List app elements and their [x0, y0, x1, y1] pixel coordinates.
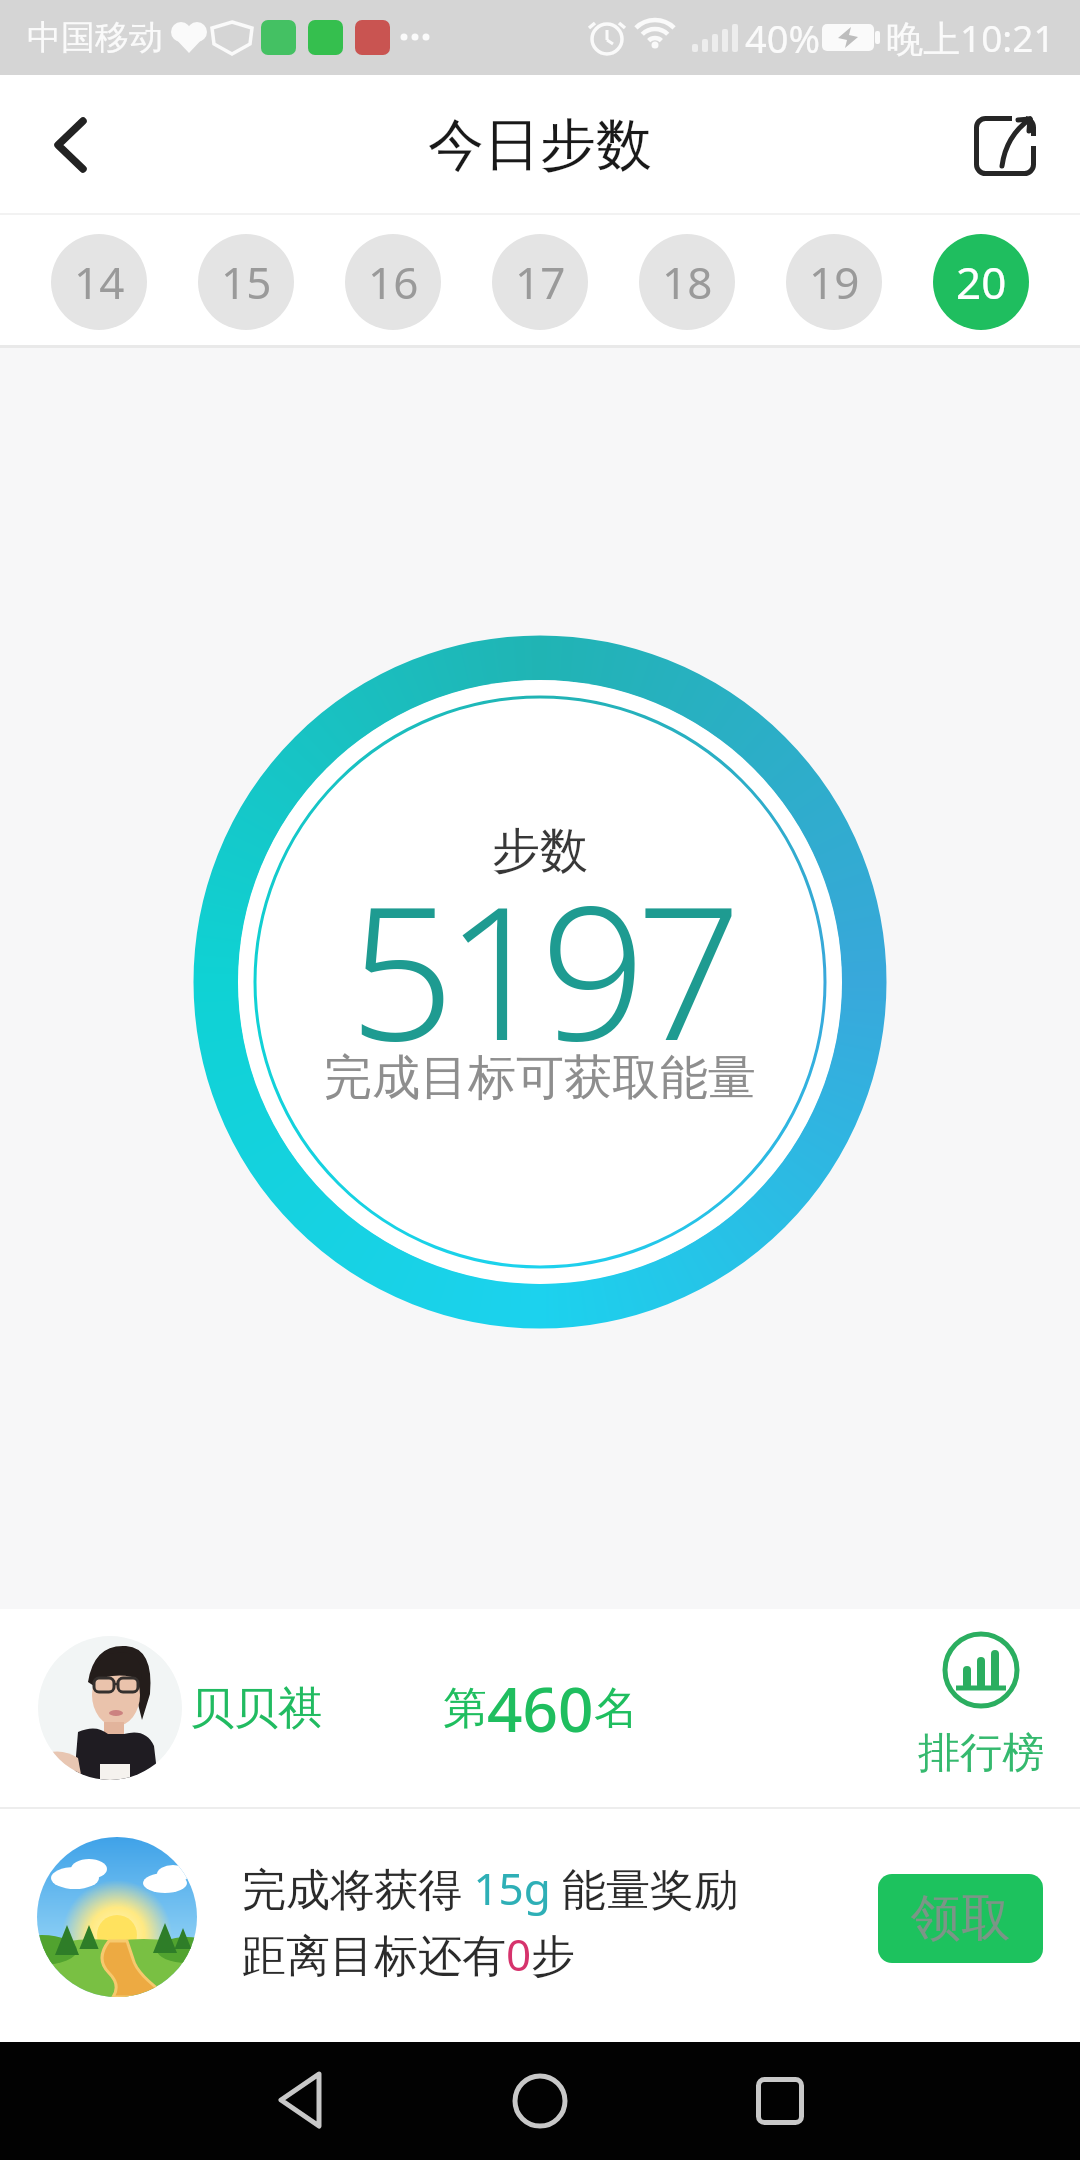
- staticText: 今日步数: [428, 110, 652, 181]
- staticText: 完成目标可获取能量: [324, 1048, 756, 1108]
- staticText: 460: [487, 1666, 594, 1750]
- button[interactable]: [720, 2042, 840, 2160]
- staticText: 贝贝祺: [190, 1681, 322, 1736]
- button[interactable]: 贝贝祺: [190, 1609, 322, 1807]
- button[interactable]: 15: [198, 234, 294, 330]
- staticText: 19: [809, 252, 860, 312]
- button[interactable]: [950, 85, 1060, 205]
- staticText: 名: [594, 1681, 638, 1736]
- staticText: 5197: [349, 842, 732, 1042]
- button[interactable]: 18: [639, 234, 735, 330]
- staticText: 距离目标还有0步: [242, 1924, 576, 1984]
- staticText: 中国移动: [27, 16, 163, 59]
- button[interactable]: [20, 85, 120, 205]
- staticText: 16: [368, 252, 419, 312]
- staticText: 第: [443, 1681, 487, 1736]
- button[interactable]: 16: [345, 234, 441, 330]
- staticText: 晚上10:21: [886, 12, 1055, 63]
- staticText: 18: [662, 252, 713, 312]
- button[interactable]: 排行榜: [905, 1617, 1057, 1801]
- staticText: 完成将获得 15g 能量奖励: [242, 1858, 739, 1918]
- button[interactable]: [480, 2042, 600, 2160]
- staticText: 15: [221, 252, 272, 312]
- button[interactable]: [38, 1636, 182, 1780]
- staticText: 14: [74, 252, 125, 312]
- button[interactable]: [240, 2042, 360, 2160]
- staticText: 步数: [492, 821, 588, 881]
- button[interactable]: 领取: [878, 1874, 1043, 1963]
- staticText: 排行榜: [918, 1727, 1044, 1780]
- button[interactable]: 19: [786, 234, 882, 330]
- staticText: 20: [956, 252, 1007, 312]
- staticText: 40%: [745, 12, 821, 64]
- button[interactable]: 17: [492, 234, 588, 330]
- button[interactable]: 14: [51, 234, 147, 330]
- staticText: 17: [515, 252, 566, 312]
- button[interactable]: 20: [933, 234, 1029, 330]
- staticText: 领取: [911, 1887, 1011, 1950]
